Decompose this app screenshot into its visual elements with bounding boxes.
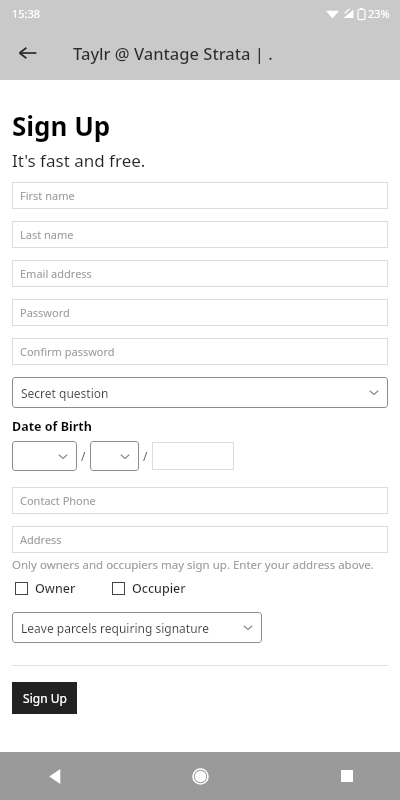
button[interactable]: Contact Phone: [12, 487, 388, 514]
button[interactable]: Occupier: [112, 580, 186, 597]
button[interactable]: Address: [12, 526, 388, 553]
staticText: Email address: [20, 266, 92, 281]
button[interactable]: Secret question: [12, 377, 388, 408]
staticText: Occupier: [132, 580, 186, 597]
button[interactable]: Last name: [12, 221, 388, 248]
staticText: Only owners and occupiers may sign up. E…: [12, 557, 388, 573]
button[interactable]: Password: [12, 299, 388, 326]
button[interactable]: Owner: [15, 580, 76, 597]
staticText: First name: [20, 188, 75, 203]
staticText: Sign Up: [12, 108, 111, 143]
staticText: Password: [20, 305, 70, 320]
staticText: It's fast and free.: [12, 149, 146, 172]
staticText: /: [81, 448, 86, 464]
staticText: Address: [20, 532, 62, 547]
staticText: Taylr @ Vantage Strata | .: [73, 42, 273, 64]
staticText: /: [143, 448, 148, 464]
button[interactable]: Confirm password: [12, 338, 388, 365]
staticText: Contact Phone: [20, 493, 96, 508]
button[interactable]: Leave parcels requiring signature: [12, 612, 262, 643]
button[interactable]: Sign Up: [12, 682, 77, 714]
staticText: Date of Birth: [12, 418, 92, 435]
button[interactable]: First name: [12, 182, 388, 209]
staticText: Confirm password: [20, 344, 115, 359]
button[interactable]: Back: [10, 35, 46, 71]
button[interactable]: [12, 441, 77, 471]
button[interactable]: Back: [0, 752, 134, 800]
staticText: Sign Up: [23, 690, 67, 706]
button[interactable]: Recent apps: [267, 752, 400, 800]
staticText: Last name: [20, 227, 74, 242]
staticText: Leave parcels requiring signature: [21, 620, 210, 636]
staticText: Secret question: [21, 385, 109, 401]
staticText: Owner: [35, 580, 76, 597]
staticText: 23%: [368, 6, 390, 21]
button[interactable]: Email address: [12, 260, 388, 287]
staticText: 15:38: [12, 6, 41, 21]
button[interactable]: Home: [134, 752, 267, 800]
button[interactable]: [152, 442, 234, 470]
button[interactable]: [90, 441, 139, 471]
